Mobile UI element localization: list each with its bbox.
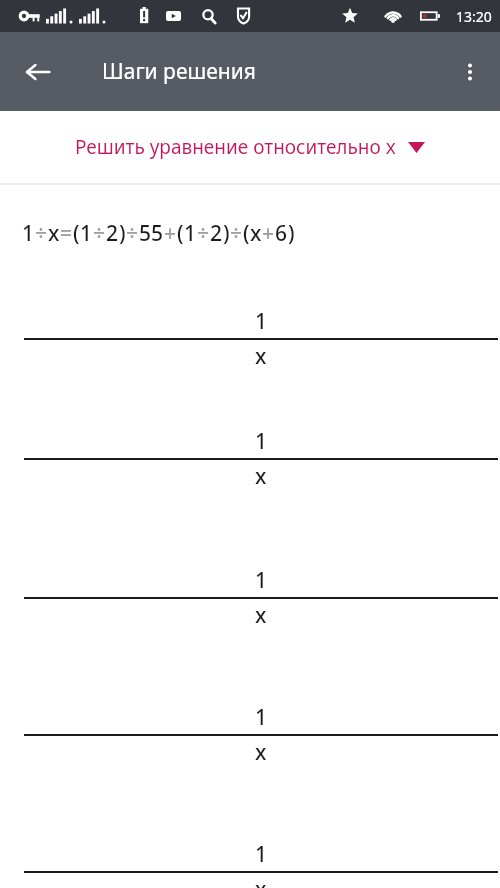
staticText: 1 [255, 566, 268, 595]
staticText: 1 [255, 840, 268, 869]
staticText: x [255, 738, 267, 767]
staticText: 2 [106, 219, 119, 248]
staticText: 1 [184, 219, 197, 248]
staticText: x [48, 219, 60, 248]
button[interactable]: 1 [0, 185, 500, 281]
staticText: ) [223, 219, 230, 248]
staticText: 1 [80, 219, 93, 248]
staticText: 1 [255, 307, 268, 336]
staticText: ÷ [197, 219, 210, 248]
staticText: x [255, 601, 267, 630]
staticText: 6 [275, 219, 288, 248]
staticText: ÷ [35, 219, 48, 248]
staticText: Решить уравнение относительно x [75, 134, 396, 160]
staticText: x [255, 342, 267, 371]
button[interactable]: 1 [0, 673, 500, 796]
staticText: x [255, 462, 267, 491]
staticText: + [164, 219, 177, 248]
staticText: ÷ [126, 219, 139, 248]
staticText: = [60, 219, 73, 248]
staticText: ( [73, 219, 80, 248]
button[interactable]: Решить уравнение относительно x [0, 111, 500, 183]
button[interactable]: Back [14, 48, 62, 96]
button[interactable]: 1 [0, 521, 500, 673]
staticText: x [250, 219, 262, 248]
staticText: ( [243, 219, 250, 248]
staticText: + [262, 219, 275, 248]
staticText: ÷ [93, 219, 106, 248]
staticText: 55 [139, 219, 164, 248]
staticText: Шаги решения [102, 57, 256, 86]
button[interactable]: 1 [0, 281, 500, 396]
staticText: x [255, 875, 267, 888]
staticText: 1 [22, 219, 35, 248]
button[interactable]: 1 [0, 796, 500, 888]
staticText: ÷ [230, 219, 243, 248]
staticText: 2 [210, 219, 223, 248]
staticText: 1 [255, 703, 268, 732]
staticText: ) [288, 219, 295, 248]
button[interactable]: 1 [0, 396, 500, 521]
staticText: 1 [255, 427, 268, 456]
button[interactable]: More options [446, 48, 494, 96]
staticText: ) [119, 219, 126, 248]
staticText: ( [177, 219, 184, 248]
staticText: 13:20 [456, 7, 492, 26]
